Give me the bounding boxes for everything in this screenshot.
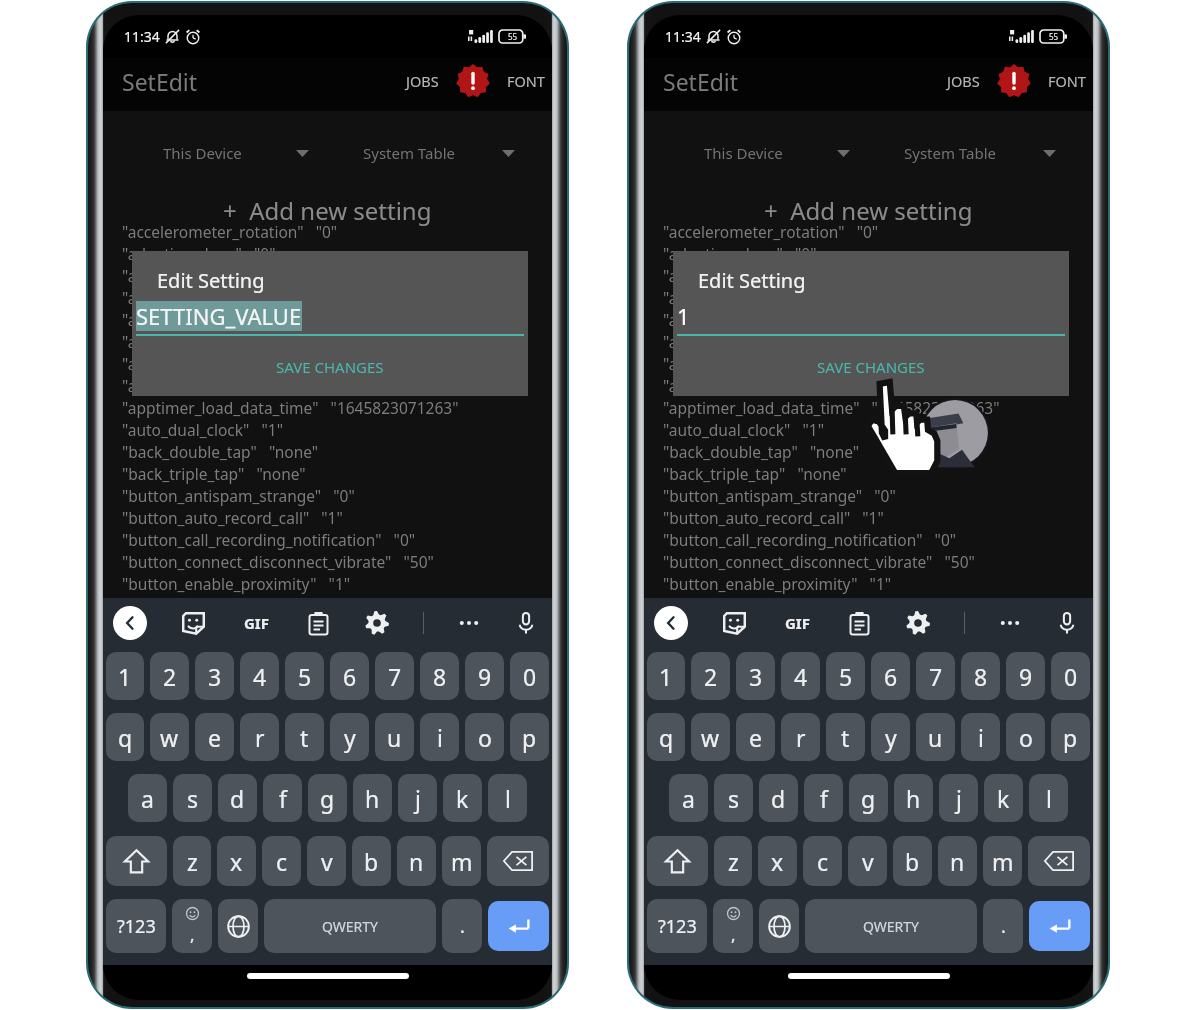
- button[interactable]: u: [375, 713, 414, 761]
- button[interactable]: "button_enable_proximity" "1": [122, 572, 552, 594]
- button[interactable]: l: [1029, 774, 1068, 822]
- button[interactable]: Clipboard: [306, 611, 331, 636]
- button[interactable]: "button_call_recording_notification" "0": [122, 528, 552, 550]
- button[interactable]: Voice input: [1055, 611, 1079, 635]
- button[interactable]: "button_antispam_strange" "0": [663, 484, 1093, 506]
- button[interactable]: "button_auto_record_call" "1": [663, 506, 1093, 528]
- button[interactable]: Warning: [455, 63, 491, 99]
- button[interactable]: 7: [375, 652, 414, 700]
- button[interactable]: q: [647, 713, 685, 761]
- button[interactable]: [106, 836, 167, 886]
- button[interactable]: "button_enable_proximity" "1": [663, 572, 1093, 594]
- button[interactable]: t: [285, 713, 324, 761]
- button[interactable]: [487, 836, 549, 886]
- button[interactable]: d: [759, 774, 798, 822]
- button[interactable]: n: [938, 836, 977, 886]
- button[interactable]: Voice input: [514, 611, 538, 635]
- button[interactable]: "app_standby_enabled" "1": [122, 374, 552, 396]
- button[interactable]: 4: [240, 652, 279, 700]
- button[interactable]: "anr_debugging_ctrl" "0": [122, 330, 552, 352]
- button[interactable]: "adaptive_sleep" "0": [663, 242, 1093, 264]
- button[interactable]: c: [803, 836, 842, 886]
- button[interactable]: "apptimer_load_data_time" "1645823071263…: [663, 396, 1093, 418]
- button[interactable]: "anr_debugging_ctrl" "0": [663, 330, 1093, 352]
- button[interactable]: QWERTY: [805, 899, 977, 953]
- button[interactable]: "angle_debug_package" "": [122, 286, 552, 308]
- button[interactable]: 5: [285, 652, 324, 700]
- button[interactable]: "anr_show_background" "0": [663, 308, 1093, 330]
- button[interactable]: "button_connect_disconnect_vibrate" "50": [663, 550, 1093, 572]
- button[interactable]: Stickers: [180, 610, 207, 637]
- button[interactable]: "app_standby_enabled" "1": [663, 374, 1093, 396]
- button[interactable]: h: [353, 774, 392, 822]
- button[interactable]: .: [983, 899, 1023, 953]
- button[interactable]: e: [736, 713, 775, 761]
- button[interactable]: 6: [871, 652, 910, 700]
- button[interactable]: 4: [781, 652, 820, 700]
- button[interactable]: More options: [998, 611, 1022, 635]
- button[interactable]: y: [330, 713, 369, 761]
- button[interactable]: "button_end_call_shortcut" "0": [663, 594, 1093, 616]
- button[interactable]: Enter: [488, 901, 549, 951]
- button[interactable]: Back: [654, 606, 688, 640]
- button[interactable]: "accelerometer_rotation" "0": [663, 220, 1093, 242]
- button[interactable]: This Device: [163, 138, 309, 168]
- button[interactable]: Clipboard: [847, 611, 872, 636]
- button[interactable]: [218, 899, 258, 953]
- button[interactable]: p: [510, 713, 549, 761]
- button[interactable]: Enter: [1029, 901, 1090, 951]
- button[interactable]: "accelerometer_rotation" "0": [122, 220, 552, 242]
- button[interactable]: This Device: [704, 138, 850, 168]
- button[interactable]: k: [443, 774, 482, 822]
- button[interactable]: h: [894, 774, 933, 822]
- button[interactable]: p: [1051, 713, 1090, 761]
- button[interactable]: ,: [172, 899, 212, 953]
- button[interactable]: Edit Setting: [132, 251, 528, 396]
- button[interactable]: 2: [150, 652, 189, 700]
- button[interactable]: "button_connect_disconnect_vibrate" "50": [122, 550, 552, 572]
- button[interactable]: SAVE CHANGES: [132, 352, 528, 382]
- button[interactable]: GIF: [240, 609, 273, 637]
- button[interactable]: .: [442, 899, 482, 953]
- button[interactable]: "app_auto_restriction" "1": [122, 352, 552, 374]
- button[interactable]: 7: [916, 652, 955, 700]
- button[interactable]: More options: [457, 611, 481, 635]
- button[interactable]: SAVE CHANGES: [673, 352, 1069, 382]
- button[interactable]: + Add new setting: [644, 192, 1093, 228]
- button[interactable]: r: [781, 713, 820, 761]
- button[interactable]: "back_triple_tap" "none": [122, 462, 552, 484]
- button[interactable]: k: [984, 774, 1023, 822]
- button[interactable]: w: [150, 713, 189, 761]
- button[interactable]: g: [308, 774, 347, 822]
- button[interactable]: + Add new setting: [103, 192, 552, 228]
- button[interactable]: y: [871, 713, 910, 761]
- button[interactable]: "auto_dual_clock" "1": [122, 418, 552, 440]
- button[interactable]: Settings: [364, 610, 390, 636]
- button[interactable]: 1: [106, 652, 144, 700]
- button[interactable]: v: [307, 836, 346, 886]
- button[interactable]: n: [397, 836, 436, 886]
- button[interactable]: ?123: [106, 899, 166, 953]
- button[interactable]: a: [669, 774, 708, 822]
- button[interactable]: [647, 836, 708, 886]
- button[interactable]: "anr_show_background" "0": [122, 308, 552, 330]
- button[interactable]: b: [893, 836, 932, 886]
- button[interactable]: "back_double_tap" "none": [122, 440, 552, 462]
- button[interactable]: "button_fast_scroll" "1": [663, 616, 1093, 638]
- button[interactable]: t: [826, 713, 865, 761]
- button[interactable]: FONT: [502, 62, 550, 100]
- button[interactable]: ,: [713, 899, 753, 953]
- button[interactable]: "button_auto_record_call" "1": [122, 506, 552, 528]
- button[interactable]: System Table: [904, 138, 1056, 168]
- button[interactable]: FONT: [1043, 62, 1091, 100]
- button[interactable]: r: [240, 713, 279, 761]
- button[interactable]: 9: [465, 652, 504, 700]
- button[interactable]: "app_auto_restriction" "1": [663, 352, 1093, 374]
- button[interactable]: "button_end_call_shortcut" "0": [122, 594, 552, 616]
- button[interactable]: GIF: [781, 609, 814, 637]
- button[interactable]: "button_call_recording_notification" "0": [663, 528, 1093, 550]
- button[interactable]: o: [1006, 713, 1045, 761]
- button[interactable]: JOBS: [401, 62, 444, 100]
- button[interactable]: f: [263, 774, 302, 822]
- button[interactable]: l: [488, 774, 527, 822]
